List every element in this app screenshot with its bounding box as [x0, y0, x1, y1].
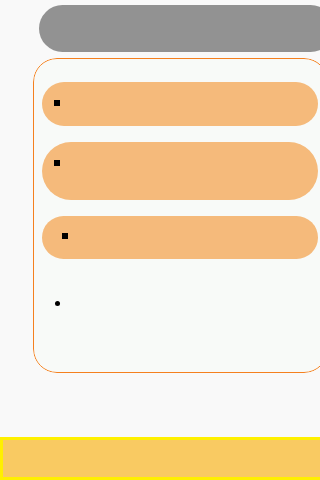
button[interactable] — [42, 82, 318, 126]
button[interactable] — [42, 142, 318, 200]
button[interactable] — [42, 216, 318, 259]
button[interactable]: Bottom navigation — [0, 437, 320, 480]
button[interactable]: Search — [39, 5, 320, 52]
button[interactable]: Item — [55, 301, 60, 306]
